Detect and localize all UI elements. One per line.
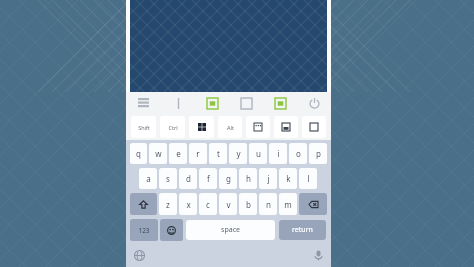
staticText: x	[186, 199, 191, 210]
button[interactable]: Change language	[129, 245, 149, 265]
staticText: Alt	[227, 124, 234, 131]
button[interactable]: u	[249, 143, 267, 164]
staticText: v	[226, 199, 231, 210]
button[interactable]: f	[199, 168, 217, 189]
staticText: p	[316, 148, 321, 159]
button[interactable]: Cursor	[161, 92, 195, 114]
button[interactable]: z	[159, 193, 177, 215]
staticText: u	[256, 148, 261, 159]
button[interactable]: Power	[297, 92, 331, 114]
button[interactable]: Alt	[218, 116, 242, 138]
staticText: r	[196, 148, 200, 159]
button[interactable]: h	[239, 168, 257, 189]
staticText: y	[236, 148, 241, 159]
staticText: f	[207, 173, 210, 184]
staticText: 123	[138, 226, 150, 235]
staticText: Ctrl	[168, 124, 178, 131]
button[interactable]: Function	[229, 92, 263, 114]
staticText: g	[226, 173, 231, 184]
button[interactable]: Windows	[189, 116, 214, 138]
button[interactable]: space	[186, 220, 275, 240]
button[interactable]: s	[159, 168, 177, 189]
staticText: n	[266, 199, 271, 210]
button[interactable]: m	[279, 193, 297, 215]
button[interactable]: q	[130, 143, 147, 164]
staticText: s	[166, 173, 170, 184]
staticText: t	[217, 148, 220, 159]
staticText: b	[246, 199, 251, 210]
button[interactable]: g	[219, 168, 237, 189]
button[interactable]: c	[199, 193, 217, 215]
button[interactable]: Enter active	[263, 92, 297, 114]
button[interactable]: Ctrl	[160, 116, 185, 138]
staticText: q	[136, 148, 141, 159]
staticText: h	[246, 173, 251, 184]
button[interactable]: Function active	[195, 92, 229, 114]
staticText: e	[176, 148, 181, 159]
button[interactable]: p	[309, 143, 327, 164]
staticText: m	[284, 199, 292, 210]
button[interactable]: w	[149, 143, 167, 164]
staticText: w	[155, 148, 162, 159]
button[interactable]: Keyboard	[246, 116, 270, 138]
staticText: l	[307, 173, 310, 184]
button[interactable]: n	[259, 193, 277, 215]
button[interactable]: Shift	[131, 116, 156, 138]
staticText: o	[296, 148, 301, 159]
button[interactable]: e	[169, 143, 187, 164]
button[interactable]: k	[279, 168, 297, 189]
button[interactable]: Shift	[130, 193, 157, 215]
button[interactable]: l	[299, 168, 317, 189]
button[interactable]: t	[209, 143, 227, 164]
button[interactable]: Minimize	[274, 116, 298, 138]
staticText: d	[186, 173, 191, 184]
button[interactable]: return	[279, 220, 326, 240]
button[interactable]: Voice input	[308, 245, 328, 265]
staticText: c	[206, 199, 210, 210]
button[interactable]: Emoji	[160, 219, 183, 241]
button[interactable]: j	[259, 168, 277, 189]
staticText: space	[221, 225, 240, 235]
button[interactable]: r	[189, 143, 207, 164]
staticText: i	[277, 148, 280, 159]
staticText: Shift	[138, 124, 150, 131]
button[interactable]: Window	[302, 116, 326, 138]
button[interactable]: d	[179, 168, 197, 189]
staticText: z	[166, 199, 170, 210]
staticText: j	[267, 173, 270, 184]
button[interactable]: a	[139, 168, 157, 189]
staticText: k	[286, 173, 291, 184]
button[interactable]: Keyboard layout	[126, 92, 161, 114]
button[interactable]: Backspace	[299, 193, 327, 215]
button[interactable]: b	[239, 193, 257, 215]
button[interactable]: y	[229, 143, 247, 164]
button[interactable]: i	[269, 143, 287, 164]
staticText: a	[146, 173, 151, 184]
button[interactable]: v	[219, 193, 237, 215]
staticText: return	[292, 225, 313, 235]
button[interactable]: o	[289, 143, 307, 164]
button[interactable]: x	[179, 193, 197, 215]
button[interactable]: 123	[130, 219, 158, 241]
